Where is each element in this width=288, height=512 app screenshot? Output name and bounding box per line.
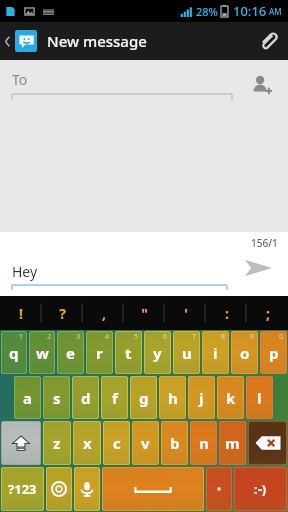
staticText: New message — [47, 31, 147, 51]
staticText: ?123 — [8, 480, 37, 498]
staticText: j — [199, 388, 204, 408]
button[interactable]: ' — [165, 296, 206, 330]
button[interactable]: f — [101, 376, 128, 419]
button[interactable]: 5 — [115, 331, 142, 374]
button[interactable]: a — [14, 376, 41, 419]
staticText: q — [9, 343, 19, 363]
staticText: f — [112, 388, 118, 408]
staticText: 5 — [134, 332, 139, 342]
staticText: y — [153, 343, 162, 363]
button[interactable]: z — [43, 421, 71, 465]
staticText: m — [225, 433, 240, 453]
button[interactable]: c — [103, 421, 130, 465]
button[interactable]: To — [12, 70, 232, 100]
staticText: 3 — [76, 332, 81, 342]
button[interactable]: Attach — [248, 22, 288, 60]
staticText: Hey — [12, 262, 38, 281]
staticText: c — [113, 433, 121, 453]
staticText: ' — [184, 304, 188, 323]
staticText: 0 — [279, 332, 284, 342]
button[interactable]: ? — [42, 296, 83, 330]
button[interactable]: ; — [247, 296, 288, 330]
staticText: k — [226, 388, 236, 408]
button[interactable]: m — [219, 421, 246, 465]
staticText: s — [53, 388, 61, 408]
staticText: b — [170, 433, 180, 453]
button[interactable]: 6 — [144, 331, 171, 374]
staticText: r — [96, 343, 103, 363]
staticText: 9 — [250, 332, 255, 342]
staticText: 1 — [19, 332, 24, 342]
button[interactable]: Hey — [12, 262, 227, 290]
staticText: w — [36, 343, 49, 363]
staticText: 156/1 — [251, 236, 278, 250]
button[interactable]: g — [130, 376, 157, 419]
staticText: p — [269, 343, 279, 363]
button[interactable]: , — [83, 296, 124, 330]
button[interactable]: Add contact — [244, 68, 278, 102]
button[interactable]: d — [72, 376, 99, 419]
button[interactable]: h — [159, 376, 186, 419]
staticText: 6 — [163, 332, 168, 342]
button[interactable]: 2 — [29, 331, 55, 374]
button[interactable]: 0 — [260, 331, 287, 374]
staticText: AM — [269, 6, 282, 17]
staticText: o — [240, 343, 250, 363]
staticText: a — [23, 388, 32, 408]
button[interactable]: 3 — [57, 331, 84, 374]
staticText: To — [12, 70, 28, 89]
staticText: 28% — [196, 4, 218, 19]
staticText: e — [66, 343, 75, 363]
staticText: 4 — [105, 332, 110, 342]
staticText: ? — [59, 304, 66, 323]
staticText: g — [139, 388, 149, 408]
staticText: v — [141, 433, 150, 453]
button[interactable]: ?123 — [1, 467, 44, 511]
button[interactable]: s — [43, 376, 70, 419]
button[interactable]: 8 — [202, 331, 229, 374]
button[interactable] — [46, 467, 72, 511]
button[interactable]: 9 — [231, 331, 258, 374]
button[interactable]: 1 — [1, 331, 27, 374]
staticText: i — [213, 343, 218, 363]
staticText: 7 — [192, 332, 197, 342]
button[interactable]: v — [132, 421, 159, 465]
button[interactable]: j — [188, 376, 215, 419]
button[interactable] — [102, 467, 204, 511]
staticText: " — [141, 304, 148, 323]
button[interactable]: :-) — [234, 467, 287, 511]
staticText: 8 — [221, 332, 226, 342]
staticText: , — [102, 304, 106, 323]
staticText: h — [168, 388, 178, 408]
staticText: u — [182, 343, 192, 363]
button[interactable]: : — [206, 296, 247, 330]
button[interactable]: " — [124, 296, 165, 330]
staticText: z — [53, 433, 61, 453]
button[interactable] — [1, 421, 41, 465]
staticText: d — [81, 388, 91, 408]
staticText: :-) — [254, 480, 267, 498]
staticText: n — [199, 433, 209, 453]
button[interactable]: 4 — [86, 331, 113, 374]
staticText: 2 — [47, 332, 52, 342]
staticText: l — [257, 388, 262, 408]
button[interactable]: n — [190, 421, 217, 465]
staticText: : — [225, 304, 229, 323]
button[interactable]: Send — [236, 246, 280, 290]
button[interactable]: ! — [0, 296, 42, 330]
staticText: ; — [266, 304, 270, 323]
button[interactable]: b — [161, 421, 188, 465]
staticText: 10:16 — [233, 2, 267, 20]
button[interactable] — [74, 467, 100, 511]
button[interactable] — [206, 467, 232, 511]
button[interactable]: l — [246, 376, 273, 419]
button[interactable]: 7 — [173, 331, 200, 374]
button[interactable]: Back — [0, 24, 39, 58]
staticText: ! — [19, 304, 23, 323]
button[interactable] — [248, 421, 287, 465]
staticText: x — [83, 433, 92, 453]
button[interactable]: x — [73, 421, 101, 465]
staticText: t — [125, 343, 132, 363]
button[interactable]: k — [217, 376, 244, 419]
